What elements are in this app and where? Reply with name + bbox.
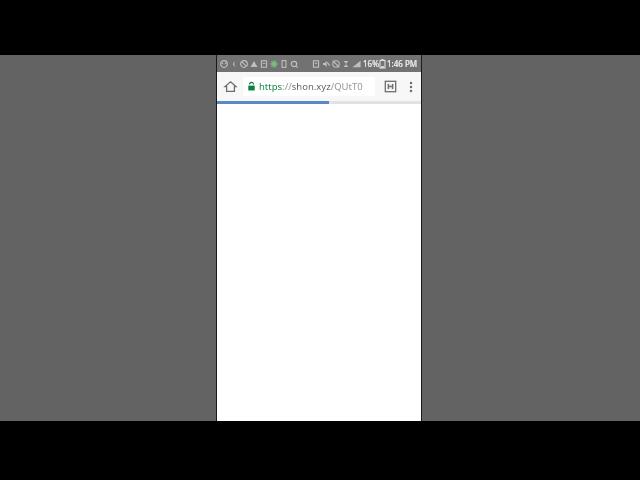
button[interactable]: More options: [401, 72, 421, 101]
button[interactable]: Home: [217, 72, 243, 101]
staticText: 1:46 PM: [387, 58, 418, 69]
button[interactable]: https://shon.xyz/QUtT0: [243, 77, 375, 96]
staticText: https://shon.xyz/QUtT0: [259, 80, 363, 93]
staticText: 16%: [363, 58, 379, 69]
button[interactable]: Switch tabs: [379, 72, 401, 101]
